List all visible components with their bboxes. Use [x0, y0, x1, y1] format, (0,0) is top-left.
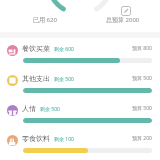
staticText: 剩余 500	[54, 76, 74, 83]
button[interactable]: 零食饮料	[0, 128, 160, 158]
button[interactable]: 人情	[0, 98, 160, 128]
staticText: 餐饮买菜	[22, 44, 50, 53]
staticText: 预算 500	[132, 105, 152, 112]
button[interactable]: 其他支出	[0, 68, 160, 98]
staticText: 人情	[22, 104, 36, 113]
staticText: 预算 500	[132, 75, 152, 82]
staticText: 总预算 2000	[106, 16, 140, 24]
staticText: 剩余 100	[54, 136, 74, 143]
staticText: 预算 200	[132, 135, 152, 142]
button[interactable]: 餐饮买菜	[0, 38, 160, 68]
staticText: 零食饮料	[22, 134, 50, 143]
staticText: 预算 800	[132, 45, 152, 52]
staticText: 其他支出	[22, 74, 50, 83]
staticText: 剩余 500	[40, 106, 60, 113]
staticText: 剩余 600	[54, 46, 74, 53]
staticText: 已用 620	[33, 16, 57, 24]
button[interactable]: Edit budget	[121, 6, 131, 16]
